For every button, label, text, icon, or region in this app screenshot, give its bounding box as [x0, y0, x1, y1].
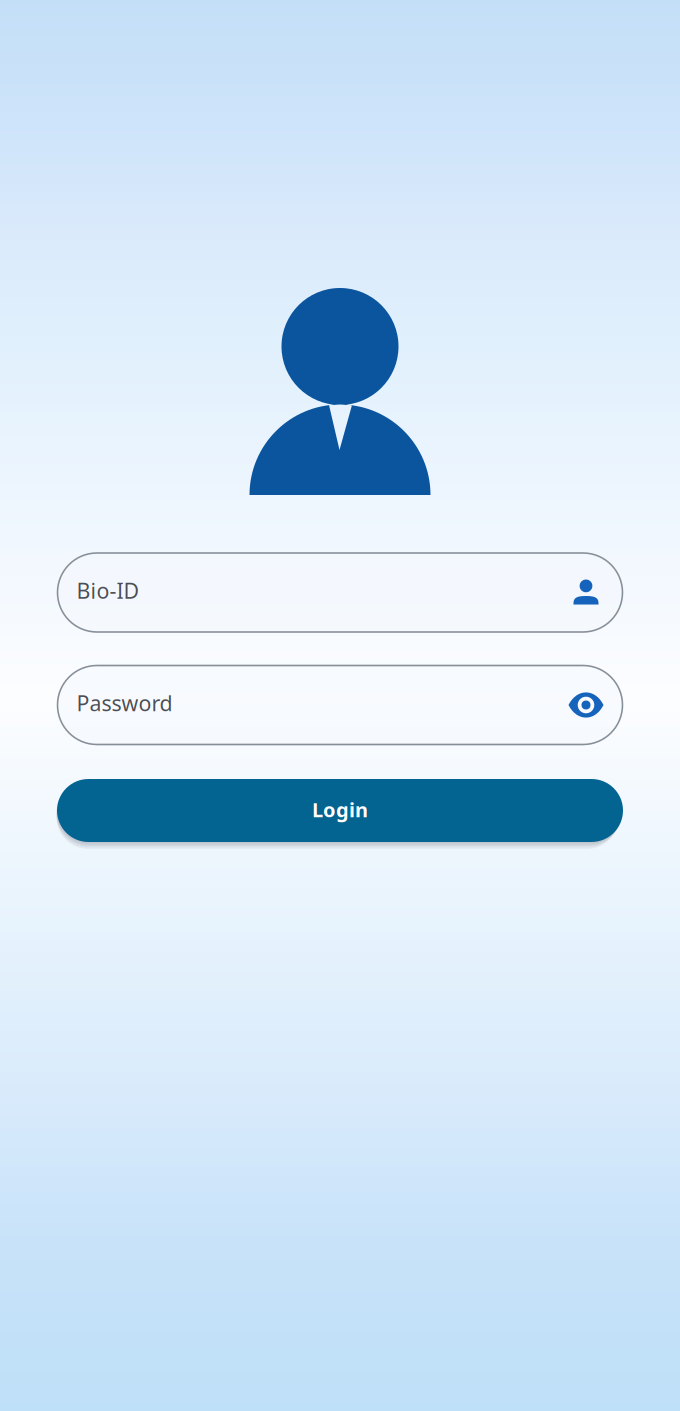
- button[interactable]: Show password: [563, 675, 609, 735]
- button[interactable]: Choose account: [563, 562, 609, 622]
- button[interactable]: Bio-ID: [57, 553, 622, 632]
- staticText: Login: [312, 796, 368, 823]
- button[interactable]: Password: [57, 665, 622, 744]
- staticText: Bio-ID: [76, 576, 139, 605]
- button[interactable]: Login: [57, 779, 623, 842]
- staticText: Password: [76, 689, 172, 717]
